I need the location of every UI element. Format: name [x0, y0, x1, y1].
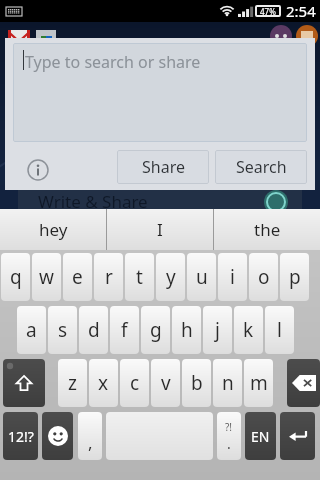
button[interactable]: b	[182, 359, 211, 407]
staticText: n	[222, 370, 234, 396]
button[interactable]: e	[63, 253, 92, 301]
staticText: Share	[142, 156, 185, 178]
staticText: d	[88, 317, 100, 343]
staticText: e	[72, 264, 83, 290]
staticText: p	[289, 264, 301, 290]
button[interactable]: t	[125, 253, 154, 301]
button[interactable]: ?!	[217, 412, 241, 460]
staticText: m	[250, 370, 268, 396]
button[interactable]: Information	[23, 155, 53, 185]
staticText: i	[230, 264, 235, 290]
staticText: 47%	[260, 6, 276, 17]
staticText: 2:54	[286, 1, 316, 21]
staticText: k	[243, 317, 254, 343]
button[interactable]: n	[213, 359, 242, 407]
staticText: Search	[236, 156, 287, 178]
staticText: Write & Share	[38, 190, 148, 213]
staticText: I	[157, 218, 163, 241]
button[interactable]: a	[17, 306, 46, 354]
button[interactable]: hey	[0, 209, 106, 250]
button[interactable]: l	[265, 306, 294, 354]
button[interactable]: Search	[215, 150, 307, 184]
staticText: c	[130, 370, 140, 396]
staticText: .	[227, 434, 231, 453]
button[interactable]: Shift	[3, 359, 45, 407]
button[interactable]: ,	[78, 412, 102, 460]
staticText: EN	[251, 427, 270, 446]
staticText: h	[181, 317, 193, 343]
button[interactable]: j	[203, 306, 232, 354]
staticText: 12!?	[8, 427, 34, 446]
button[interactable]: v	[151, 359, 180, 407]
staticText: r	[105, 264, 113, 290]
staticText: Type to search or share	[25, 51, 201, 73]
button[interactable]: s	[48, 306, 77, 354]
staticText: y	[166, 264, 176, 290]
button[interactable]: i	[218, 253, 247, 301]
staticText: l	[277, 317, 282, 343]
staticText: ?!	[225, 420, 233, 434]
button[interactable]: d	[79, 306, 108, 354]
button[interactable]: k	[234, 306, 263, 354]
staticText: w	[39, 264, 54, 290]
button[interactable]: I	[107, 209, 213, 250]
button[interactable]: Space	[106, 412, 213, 460]
button[interactable]: Backspace	[287, 359, 320, 407]
staticText: hey	[39, 218, 68, 241]
staticText: ,	[88, 431, 93, 454]
staticText: o	[258, 264, 270, 290]
button[interactable]: x	[89, 359, 118, 407]
button[interactable]: o	[249, 253, 278, 301]
staticText: t	[136, 264, 143, 290]
button[interactable]: r	[94, 253, 123, 301]
button[interactable]: Emoji	[42, 412, 73, 460]
button[interactable]: h	[172, 306, 201, 354]
staticText: z	[68, 370, 77, 396]
button[interactable]: Type to search or share	[13, 43, 307, 142]
staticText: s	[58, 317, 68, 343]
button[interactable]: f	[110, 306, 139, 354]
staticText: b	[191, 370, 203, 396]
staticText: the	[254, 218, 281, 241]
staticText: v	[161, 370, 171, 396]
staticText: j	[215, 317, 220, 343]
button[interactable]: EN	[245, 412, 276, 460]
button[interactable]: y	[156, 253, 185, 301]
staticText: x	[98, 370, 109, 396]
button[interactable]: Share	[117, 150, 209, 184]
button[interactable]: the	[214, 209, 320, 250]
button[interactable]: c	[120, 359, 149, 407]
staticText: f	[121, 317, 128, 343]
staticText: q	[10, 264, 22, 290]
button[interactable]: m	[244, 359, 273, 407]
button[interactable]: g	[141, 306, 170, 354]
button[interactable]: z	[58, 359, 87, 407]
staticText: g	[150, 317, 162, 343]
staticText: u	[196, 264, 208, 290]
button[interactable]: q	[1, 253, 30, 301]
button[interactable]: 12!?	[3, 412, 38, 460]
button[interactable]: p	[280, 253, 309, 301]
button[interactable]: Enter	[280, 412, 315, 460]
button[interactable]: w	[32, 253, 61, 301]
staticText: a	[26, 317, 37, 343]
button[interactable]: u	[187, 253, 216, 301]
